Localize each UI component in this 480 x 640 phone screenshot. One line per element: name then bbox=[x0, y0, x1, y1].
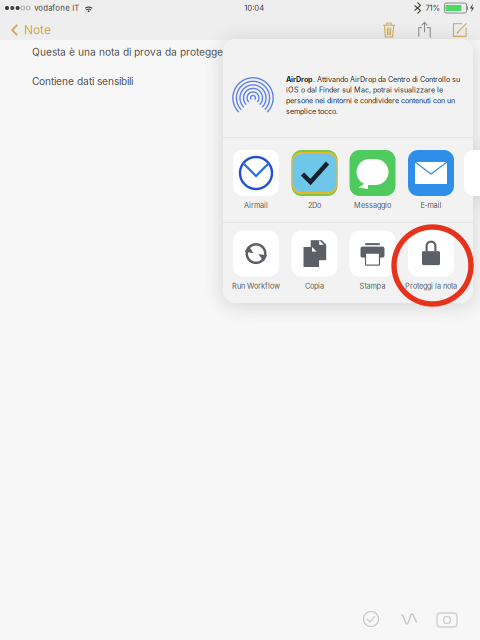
button[interactable]: Stampa bbox=[343, 231, 402, 290]
button[interactable]: Airmail bbox=[226, 150, 285, 210]
button[interactable]: 2Do bbox=[285, 150, 344, 210]
staticText: 10:04 bbox=[244, 3, 264, 13]
button[interactable]: Disegna bbox=[390, 606, 428, 632]
staticText: Questa è una nota di prova da proteggere bbox=[32, 46, 233, 58]
staticText: . Attivando AirDrop da Centro di Control… bbox=[313, 75, 460, 84]
button[interactable]: Note bbox=[0, 16, 51, 44]
button[interactable]: Condividi bbox=[407, 16, 442, 44]
staticText: semplice tocco. bbox=[286, 107, 338, 116]
staticText: Proteggi la nota bbox=[405, 282, 457, 290]
staticText: Note bbox=[24, 23, 51, 37]
staticText: vodafone IT bbox=[34, 3, 79, 13]
staticText: E-mail bbox=[420, 201, 441, 210]
staticText: Stampa bbox=[359, 282, 385, 290]
button[interactable]: Nuova nota bbox=[442, 16, 478, 44]
staticText: iOS o dal Finder sul Mac, potrai visuali… bbox=[286, 86, 443, 94]
staticText: AirDrop bbox=[286, 75, 313, 84]
staticText: persone nei dintorni e condividere conte… bbox=[286, 96, 455, 105]
button[interactable]: Messaggio bbox=[343, 150, 402, 210]
staticText: 71% bbox=[425, 3, 440, 13]
staticText: Airmail bbox=[244, 201, 268, 210]
staticText: 2Do bbox=[308, 201, 321, 210]
button[interactable]: Elimina bbox=[371, 16, 407, 44]
button[interactable]: Proteggi la nota bbox=[401, 231, 460, 290]
staticText: Messaggio bbox=[354, 201, 391, 210]
staticText: Contiene dati sensibili bbox=[32, 75, 133, 88]
staticText: Run Workflow bbox=[232, 282, 280, 290]
button[interactable]: E-mail bbox=[401, 150, 460, 210]
button[interactable]: Copia bbox=[285, 231, 344, 290]
button[interactable]: Fotocamera bbox=[428, 606, 466, 632]
button[interactable]: Lista bbox=[352, 606, 390, 632]
button[interactable]: Run Workflow bbox=[226, 231, 285, 290]
staticText: Copia bbox=[305, 282, 324, 290]
